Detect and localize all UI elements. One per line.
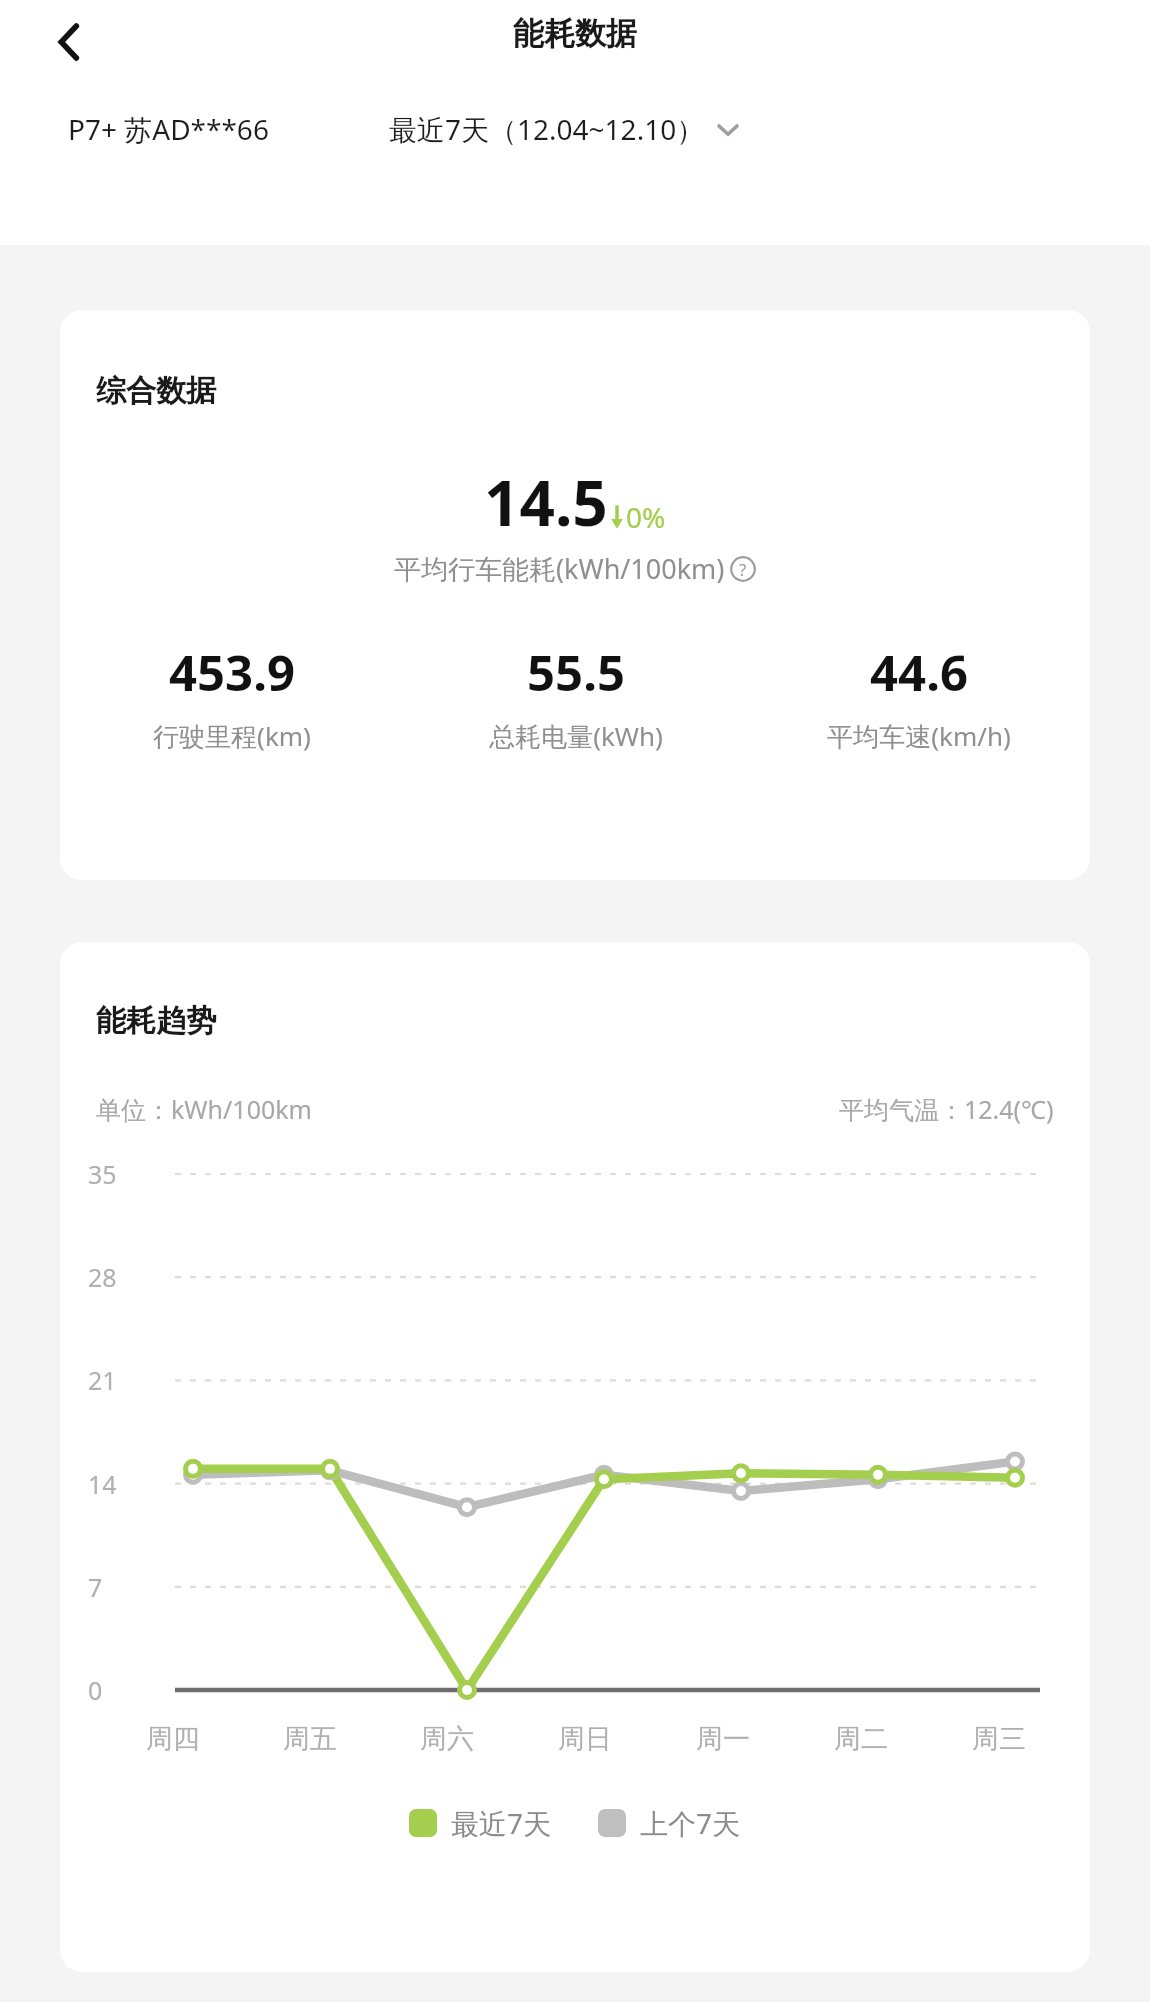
staticText: 28 [88, 1260, 117, 1294]
staticText: 周一 [696, 1722, 750, 1756]
staticText: 35 [88, 1157, 117, 1191]
staticText: 453.9 [169, 639, 295, 706]
staticText: 平均车速(km/h) [827, 718, 1011, 754]
staticText: 平均气温：12.4(℃) [839, 1092, 1054, 1126]
staticText: 44.6 [870, 639, 968, 706]
staticText: 7 [88, 1570, 103, 1604]
staticText: 上个7天 [640, 1804, 741, 1842]
staticText: 单位：kWh/100km [96, 1092, 312, 1126]
button[interactable]: 上个7天 [598, 1804, 741, 1842]
staticText: 周三 [972, 1722, 1026, 1756]
staticText: 周日 [558, 1722, 612, 1756]
staticText: 0 [88, 1673, 103, 1707]
staticText: 能耗趋势 [96, 1002, 216, 1040]
button[interactable]: Help [730, 556, 756, 582]
staticText: 55.5 [527, 639, 625, 706]
button[interactable]: 44.6 [747, 639, 1090, 754]
button[interactable]: 453.9 [60, 639, 404, 754]
button[interactable]: 最近7天（12.04~12.10） [389, 110, 741, 148]
staticText: 14.5 [484, 460, 608, 544]
staticText: P7+ 苏AD***66 [68, 110, 269, 148]
staticText: 最近7天 [451, 1804, 552, 1842]
staticText: ? [739, 558, 747, 581]
staticText: 综合数据 [96, 372, 216, 410]
staticText: 周二 [834, 1722, 888, 1756]
staticText: 周五 [283, 1722, 337, 1756]
button[interactable]: Back [30, 2, 110, 82]
staticText: 14 [88, 1467, 117, 1501]
staticText: 0% [626, 498, 666, 536]
staticText: 能耗数据 [513, 14, 637, 53]
staticText: 周四 [146, 1722, 200, 1756]
staticText: 行驶里程(km) [153, 718, 311, 754]
staticText: 周六 [420, 1722, 474, 1756]
staticText: 最近7天（12.04~12.10） [389, 110, 705, 148]
button[interactable]: 最近7天 [409, 1804, 552, 1842]
staticText: 21 [88, 1363, 117, 1397]
button[interactable]: 55.5 [404, 639, 747, 754]
staticText: 总耗电量(kWh) [489, 718, 663, 754]
staticText: 平均行车能耗(kWh/100km) [394, 550, 725, 587]
